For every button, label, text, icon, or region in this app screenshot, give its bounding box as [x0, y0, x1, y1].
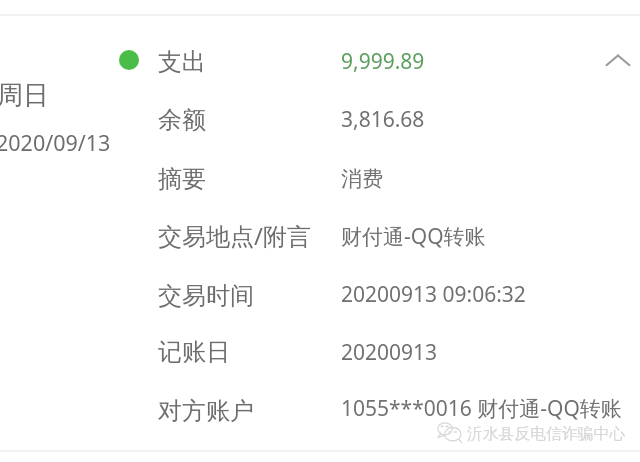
staticText: 支出	[158, 47, 206, 77]
staticText: 2020/09/13	[0, 128, 111, 157]
button[interactable]	[140, 207, 590, 257]
staticText: 摘要	[158, 164, 206, 194]
button[interactable]	[140, 324, 590, 374]
staticText: 20200913	[341, 338, 438, 367]
staticText: 周日	[0, 79, 49, 112]
staticText: 交易时间	[158, 281, 254, 311]
button[interactable]	[140, 382, 590, 432]
button[interactable]	[140, 91, 590, 141]
button[interactable]	[140, 265, 590, 315]
staticText: 财付通-QQ转账	[341, 222, 486, 251]
staticText: 沂水县反电信诈骗中心	[467, 424, 625, 444]
staticText: 3,816.68	[341, 105, 425, 134]
staticText: 交易地点/附言	[158, 219, 311, 252]
staticText: 消费	[341, 166, 383, 192]
button[interactable]: Collapse details	[600, 42, 636, 78]
staticText: 20200913 09:06:32	[341, 280, 526, 309]
button[interactable]: Expense type	[119, 50, 139, 70]
staticText: 记账日	[158, 337, 230, 367]
staticText: 9,999.89	[341, 47, 425, 76]
staticText: 余额	[158, 105, 206, 135]
staticText: 1055***0016 财付通-QQ转账	[341, 394, 622, 423]
button[interactable]	[140, 33, 590, 83]
staticText: 对方账户	[158, 396, 254, 426]
button[interactable]	[140, 149, 590, 199]
